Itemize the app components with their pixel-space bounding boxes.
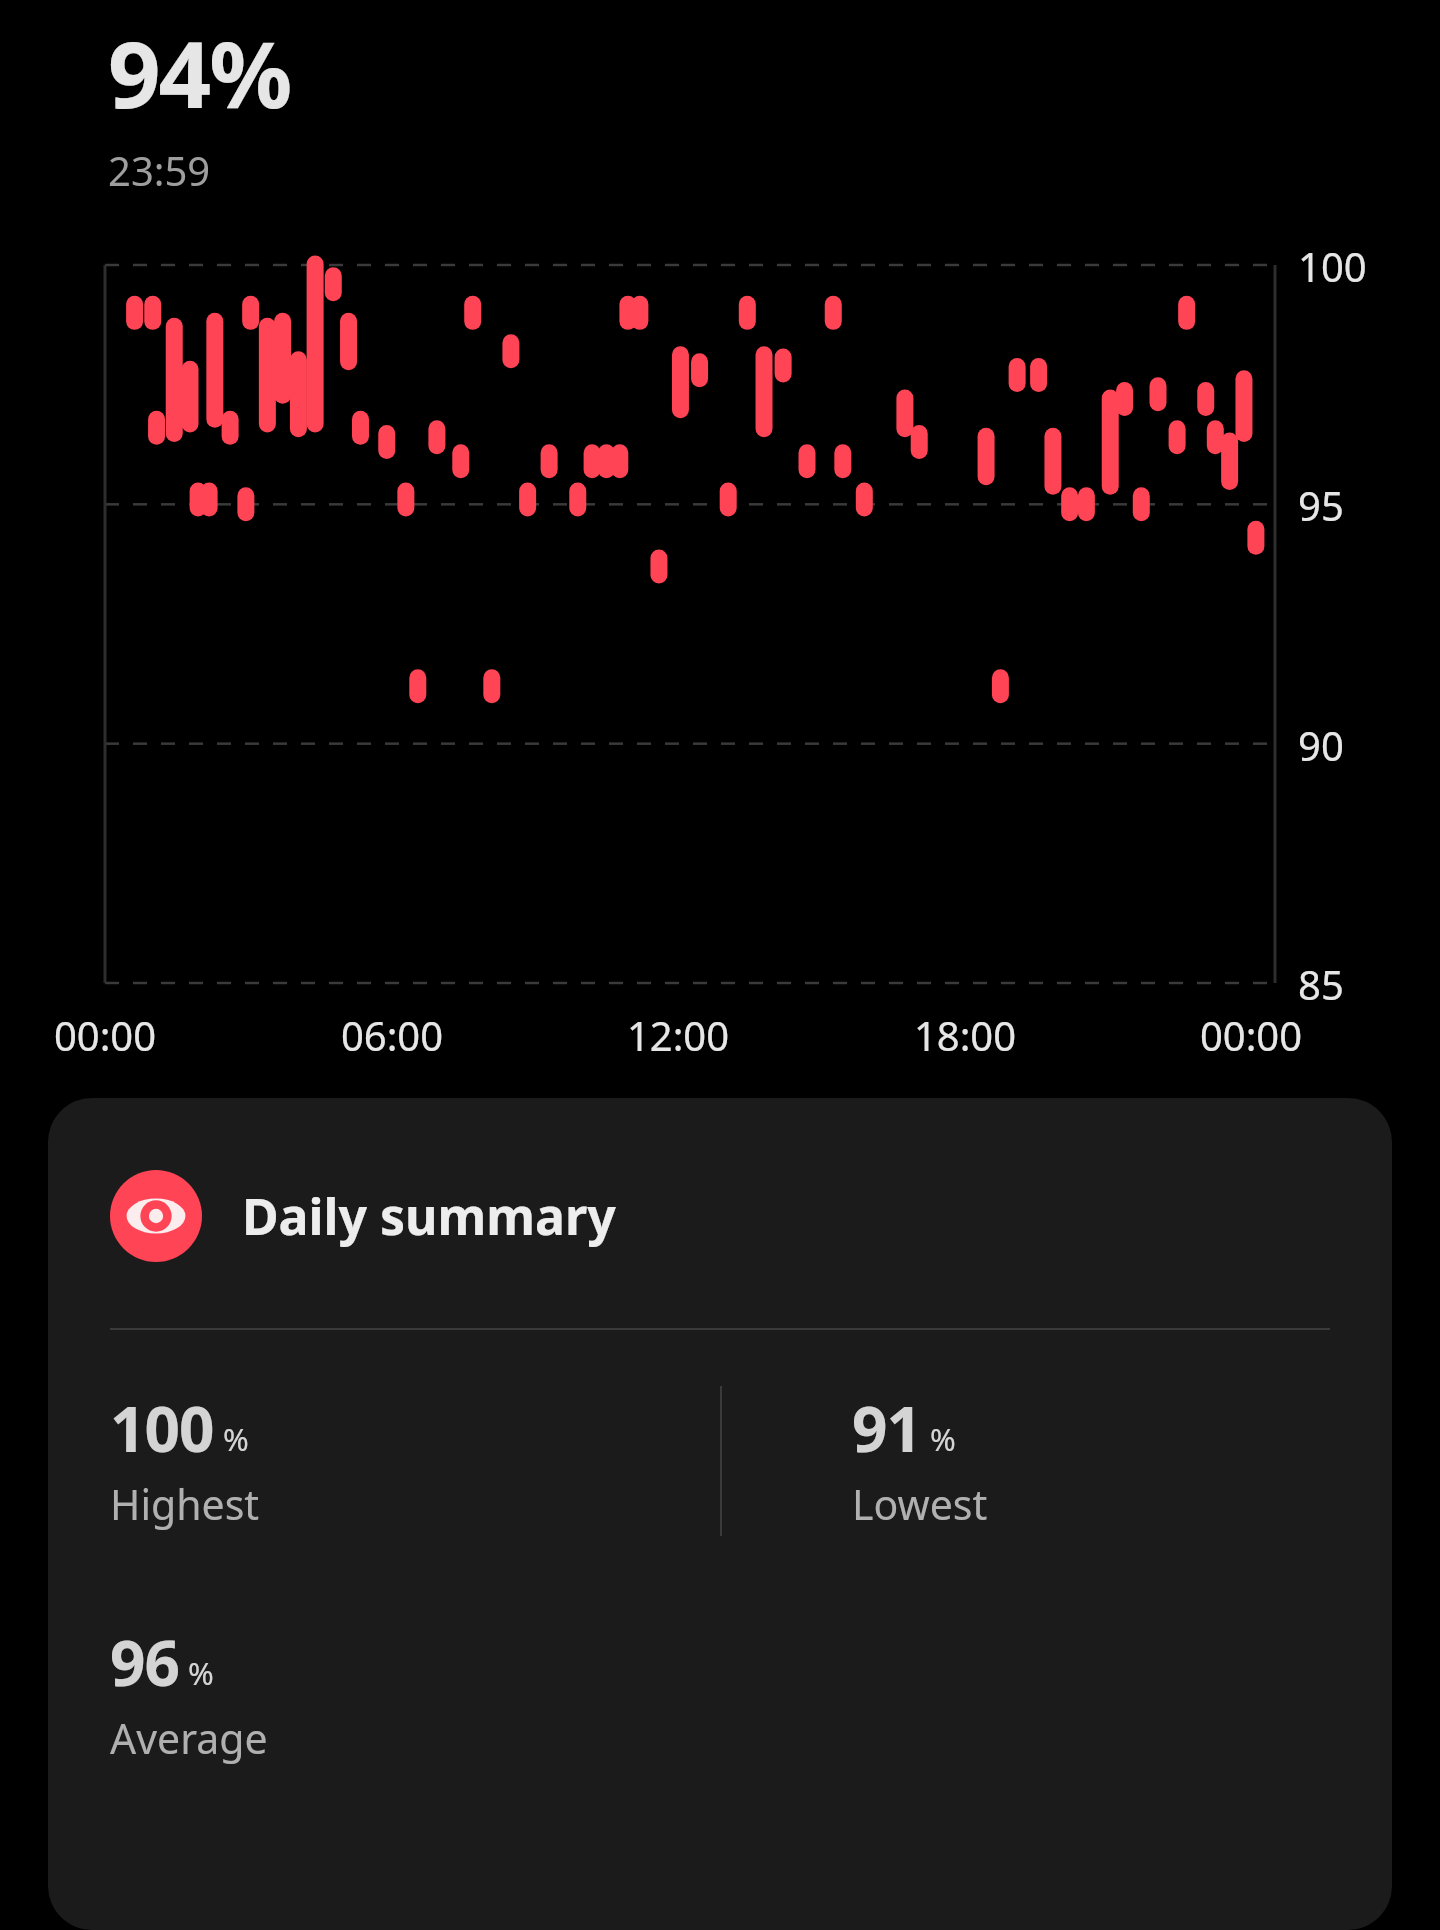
other: Blood oxygen [110,1170,202,1262]
staticText: 85 [1298,957,1344,1011]
staticText: Highest [110,1476,260,1532]
staticText: 23:59 [108,143,211,197]
staticText: % [930,1418,956,1460]
staticText: 100 [1298,239,1367,293]
staticText: 100 [110,1386,214,1470]
staticText: Average [110,1710,268,1766]
staticText: % [188,1652,214,1694]
staticText: 91 [852,1386,921,1470]
staticText: 95 [1298,478,1344,532]
staticText: 12:00 [605,1008,751,1062]
staticText: 90 [1298,718,1344,772]
staticText: 00:00 [1178,1008,1324,1062]
staticText: Lowest [852,1476,988,1532]
staticText: 06:00 [319,1008,465,1062]
staticText: 00:00 [32,1008,178,1062]
staticText: Daily summary [242,1182,616,1250]
button[interactable]: Blood oxygen [48,1098,1392,1930]
staticText: 18:00 [892,1008,1038,1062]
staticText: % [223,1418,249,1460]
staticText: 94% [108,10,291,135]
staticText: 96 [110,1620,179,1704]
